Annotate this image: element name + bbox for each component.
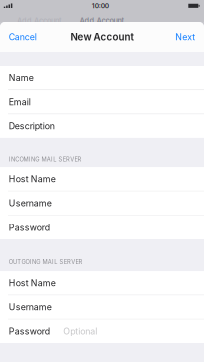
button[interactable]: Username <box>0 295 204 319</box>
staticText: Add Account <box>17 16 62 25</box>
button[interactable]: Email <box>0 90 204 114</box>
button[interactable]: Cancel <box>0 26 44 48</box>
button[interactable]: Next <box>168 26 204 48</box>
staticText: Optional <box>63 326 97 336</box>
button[interactable]: Password <box>0 216 204 239</box>
staticText: Cancel <box>9 32 37 42</box>
button[interactable]: Description <box>0 114 204 138</box>
staticText: Password <box>9 222 50 233</box>
staticText: Username <box>9 198 52 208</box>
staticText: Name <box>9 72 34 83</box>
staticText: Next <box>175 32 195 42</box>
staticText: Description <box>9 121 55 131</box>
staticText: Add Account <box>79 16 124 25</box>
button[interactable]: Host Name <box>0 271 204 295</box>
button[interactable]: Password <box>0 319 204 343</box>
staticText: Username <box>9 302 52 312</box>
staticText: 10:00 <box>92 2 109 10</box>
staticText: OUTGOING MAIL SERVER <box>9 258 82 265</box>
button[interactable]: Name <box>0 66 204 90</box>
staticText: Host Name <box>9 278 56 288</box>
staticText: Email <box>9 97 31 107</box>
staticText: INCOMING MAIL SERVER <box>9 156 81 163</box>
button[interactable]: Host Name <box>0 167 204 191</box>
staticText: Host Name <box>9 174 56 184</box>
staticText: New Account <box>70 31 133 43</box>
button[interactable]: Username <box>0 191 204 215</box>
staticText: Password <box>9 326 50 336</box>
